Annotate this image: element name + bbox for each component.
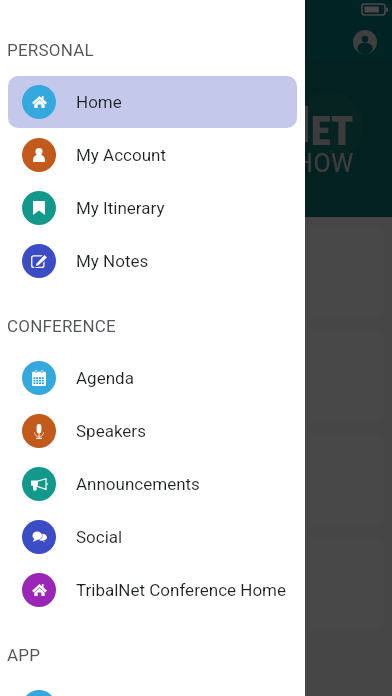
button[interactable]: Agenda [8,537,384,631]
staticText: TRADESHOW [200,149,354,178]
staticText: ET [311,108,354,155]
button[interactable]: My Notes [8,235,297,287]
button[interactable]: Speakers [8,405,297,457]
staticText: Speakers [76,421,146,441]
staticText: Agenda [76,368,134,388]
staticText: Announcements [76,474,200,494]
staticText: N [280,96,311,155]
button[interactable]: Social [8,511,297,563]
button[interactable]: Announcements [8,433,384,527]
button[interactable]: Home [8,76,297,128]
staticText: APP [7,645,41,665]
staticText: TribalNet Conference Home [76,580,287,600]
button[interactable]: Vendors [8,329,384,423]
button[interactable]: Account [349,26,381,58]
staticText: Agenda [164,573,229,595]
staticText: RIBAL [180,108,280,155]
staticText: PERSONAL [7,40,94,60]
staticText: Home [76,92,122,112]
button[interactable]: My Itinerary [8,182,297,234]
button[interactable]: Announcements [8,458,297,510]
staticText: CONFERENCE [7,316,116,336]
button[interactable]: My Account [8,129,297,181]
button[interactable]: Speakers [8,225,384,319]
staticText: Social [76,527,123,547]
staticText: My Itinerary [76,198,165,218]
staticText: Announcements [127,469,266,491]
staticText: T [152,96,180,155]
button[interactable]: TribalNet Conference Home [8,564,297,616]
staticText: My Account [76,145,167,165]
staticText: My Notes [76,251,149,271]
button[interactable]: Agenda [8,352,297,404]
button[interactable]: Settings [8,681,297,696]
